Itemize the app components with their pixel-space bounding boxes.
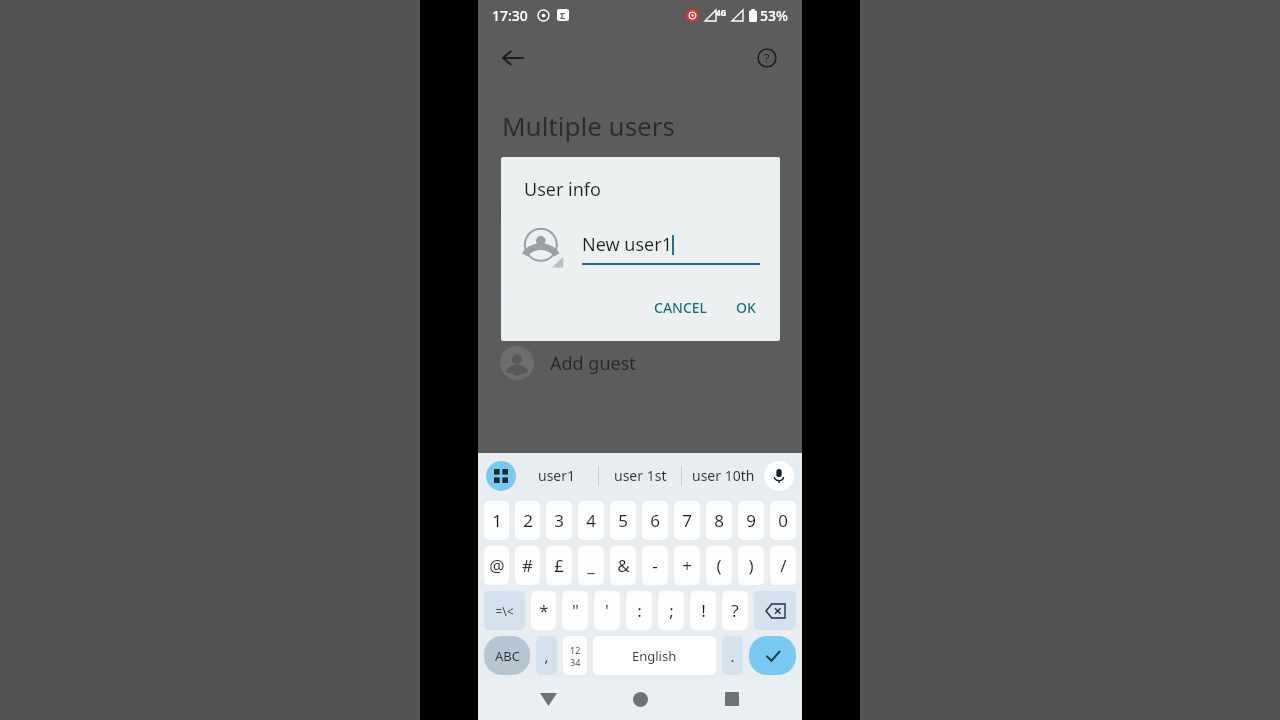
- button[interactable]: &: [610, 546, 636, 585]
- staticText: !: [701, 599, 706, 622]
- button[interactable]: 8: [706, 501, 732, 540]
- button[interactable]: Change user photo: [524, 228, 564, 268]
- button[interactable]: .: [722, 636, 743, 675]
- staticText: ,: [544, 646, 549, 666]
- button[interactable]: ;: [658, 591, 684, 630]
- staticText: £: [554, 554, 564, 577]
- button[interactable]: Numbers: [563, 636, 587, 675]
- button[interactable]: ?: [722, 591, 748, 630]
- staticText: *: [539, 599, 549, 622]
- staticText: Multiple users: [502, 108, 675, 143]
- staticText: English: [632, 647, 677, 665]
- button[interactable]: Keyboard options: [486, 461, 516, 491]
- button[interactable]: user 10th: [682, 453, 764, 498]
- staticText: &: [617, 554, 630, 577]
- staticText: 0: [778, 509, 788, 532]
- staticText: user1: [538, 466, 576, 485]
- button[interactable]: ': [594, 591, 620, 630]
- staticText: .: [730, 646, 735, 666]
- button[interactable]: Back: [526, 678, 570, 720]
- staticText: ": [572, 599, 579, 622]
- button[interactable]: 1: [484, 501, 509, 540]
- staticText: 9: [746, 509, 756, 532]
- staticText: 8: [714, 509, 724, 532]
- staticText: -: [652, 554, 658, 577]
- button[interactable]: Backspace: [754, 591, 796, 630]
- button[interactable]: _: [578, 546, 604, 585]
- staticText: (: [716, 554, 722, 577]
- button[interactable]: 3: [546, 501, 572, 540]
- staticText: #: [522, 554, 533, 577]
- button[interactable]: ): [738, 546, 764, 585]
- button[interactable]: Add guest: [478, 346, 802, 380]
- staticText: +: [682, 554, 692, 577]
- button[interactable]: 7: [674, 501, 700, 540]
- button[interactable]: 2: [515, 501, 540, 540]
- button[interactable]: ": [562, 591, 588, 630]
- staticText: /: [780, 554, 787, 577]
- button[interactable]: Back: [494, 39, 532, 77]
- button[interactable]: :: [626, 591, 652, 630]
- staticText: 5: [618, 509, 628, 532]
- staticText: =\<: [495, 603, 514, 619]
- button[interactable]: !: [690, 591, 716, 630]
- button[interactable]: /: [770, 546, 796, 585]
- staticText: ABC: [495, 647, 520, 665]
- button[interactable]: You (Serhii): [478, 275, 802, 318]
- button[interactable]: *: [531, 591, 556, 630]
- staticText: @: [489, 554, 505, 577]
- button[interactable]: OK: [726, 292, 766, 323]
- staticText: ?: [731, 599, 739, 622]
- staticText: user 10th: [692, 466, 755, 485]
- button[interactable]: Done: [749, 636, 796, 675]
- button[interactable]: user 1st: [599, 453, 681, 498]
- button[interactable]: #: [515, 546, 540, 585]
- staticText: 12: [570, 644, 581, 656]
- staticText: OK: [736, 298, 756, 317]
- staticText: user 1st: [614, 466, 667, 485]
- staticText: 53%: [760, 6, 788, 25]
- button[interactable]: 0: [770, 501, 796, 540]
- button[interactable]: Home: [618, 678, 662, 720]
- button[interactable]: -: [642, 546, 668, 585]
- staticText: ?: [764, 49, 770, 67]
- button[interactable]: CANCEL: [644, 292, 718, 323]
- button[interactable]: @: [484, 546, 509, 585]
- staticText: 4G: [716, 7, 727, 18]
- staticText: User info: [524, 177, 601, 202]
- button[interactable]: 6: [642, 501, 668, 540]
- staticText: 2: [523, 509, 533, 532]
- button[interactable]: =\<: [484, 591, 525, 630]
- button[interactable]: £: [546, 546, 572, 585]
- staticText: CANCEL: [654, 298, 708, 317]
- button[interactable]: ,: [536, 636, 557, 675]
- staticText: 3: [554, 509, 564, 532]
- staticText: Add guest: [550, 351, 636, 376]
- staticText: ): [748, 554, 754, 577]
- button[interactable]: Voice input: [764, 461, 794, 491]
- staticText: 7: [682, 509, 692, 532]
- staticText: ;: [669, 599, 674, 622]
- staticText: ': [605, 599, 609, 622]
- button[interactable]: +: [674, 546, 700, 585]
- button[interactable]: English: [593, 636, 716, 675]
- button[interactable]: (: [706, 546, 732, 585]
- staticText: Σ: [560, 9, 566, 21]
- staticText: 4: [586, 509, 596, 532]
- staticText: 6: [650, 509, 660, 532]
- staticText: _: [587, 554, 595, 577]
- staticText: 1: [492, 509, 502, 532]
- button[interactable]: Recents: [710, 678, 754, 720]
- button[interactable]: 9: [738, 501, 764, 540]
- staticText: :: [637, 599, 642, 622]
- staticText: 34: [570, 656, 581, 668]
- button[interactable]: 4: [578, 501, 604, 540]
- staticText: 17:30: [492, 6, 528, 25]
- button[interactable]: Help: [748, 39, 786, 77]
- button[interactable]: user1: [516, 453, 598, 498]
- button[interactable]: 5: [610, 501, 636, 540]
- button[interactable]: ABC: [484, 636, 530, 675]
- staticText: New user1: [582, 232, 672, 257]
